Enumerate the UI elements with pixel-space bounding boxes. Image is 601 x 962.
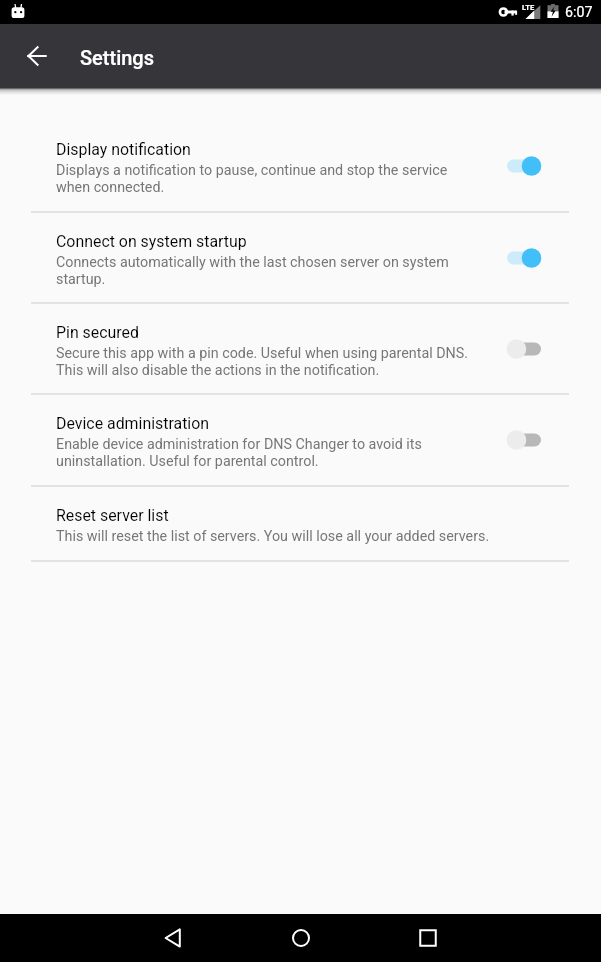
button[interactable]: Reset server list <box>0 486 601 561</box>
staticText: Pin secured <box>56 323 139 342</box>
button[interactable]: Toggle off <box>500 416 548 464</box>
staticText: Reset server list <box>56 506 169 525</box>
button[interactable]: Recent apps <box>404 914 452 962</box>
staticText: Display notification <box>56 140 191 159</box>
staticText: Settings <box>80 46 155 69</box>
staticText: This will reset the list of servers. You… <box>56 528 490 545</box>
button[interactable]: Toggle on <box>500 234 548 282</box>
staticText: LTE <box>522 3 535 12</box>
button[interactable]: Navigate up <box>13 32 61 80</box>
staticText: Secure this app with a pin code. Useful … <box>56 345 478 378</box>
button[interactable]: Connect on system startup <box>0 212 601 303</box>
staticText: Connects automatically with the last cho… <box>56 254 478 287</box>
button[interactable]: Display notification <box>0 120 601 212</box>
button[interactable]: Toggle off <box>500 325 548 373</box>
button[interactable]: Back <box>149 914 197 962</box>
button[interactable]: Home <box>277 914 325 962</box>
button[interactable]: Toggle on <box>500 142 548 190</box>
staticText: Device administration <box>56 414 210 433</box>
button[interactable]: Device administration <box>0 394 601 486</box>
staticText: Displays a notification to pause, contin… <box>56 162 478 195</box>
button[interactable]: Pin secured <box>0 303 601 394</box>
staticText: 6:07 <box>565 4 593 21</box>
staticText: Enable device administration for DNS Cha… <box>56 436 478 469</box>
staticText: Connect on system startup <box>56 232 247 251</box>
